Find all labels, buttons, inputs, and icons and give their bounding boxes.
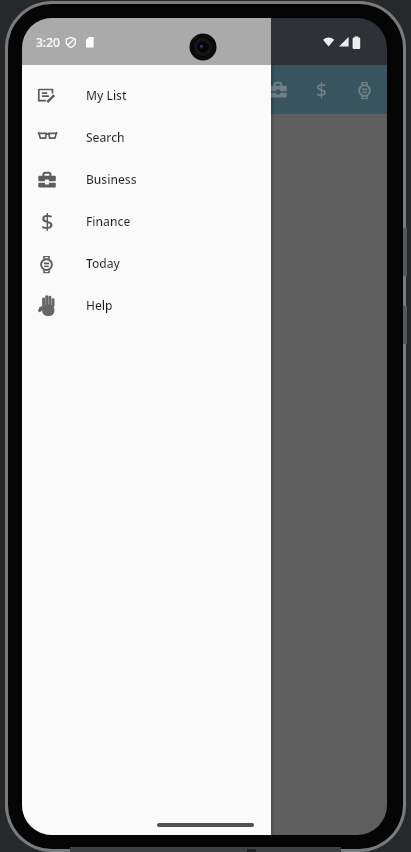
staticText: Today [86,255,120,271]
staticText: Business [86,171,137,187]
staticText: Finance [86,213,131,229]
button[interactable]: $ [312,80,331,99]
button[interactable]: Help [22,284,271,326]
button[interactable]: Search [22,116,271,158]
button[interactable] [356,82,375,101]
staticText: 3:20 [36,34,60,50]
staticText: $ [316,77,327,103]
button[interactable]: Business [22,158,271,200]
button[interactable] [269,82,288,101]
button[interactable]: $ [22,200,271,242]
staticText: My List [86,87,127,103]
button[interactable]: Today [22,242,271,284]
button[interactable]: My List [22,74,271,116]
staticText: $ [41,205,54,235]
staticText: Search [86,129,125,145]
staticText: Help [86,297,113,313]
